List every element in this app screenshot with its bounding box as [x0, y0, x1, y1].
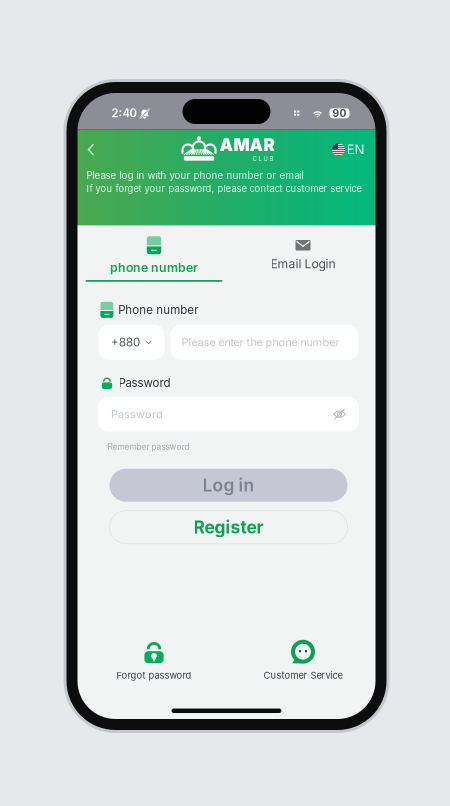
staticText: AMAR — [219, 135, 274, 155]
button[interactable]: Forgot password — [79, 640, 228, 681]
staticText: Password — [111, 408, 163, 421]
staticText: Register — [193, 517, 263, 538]
staticText: +880 — [111, 335, 140, 349]
button[interactable]: phone number — [79, 225, 228, 282]
staticText: Log in — [202, 475, 254, 496]
button[interactable]: Show password — [327, 408, 346, 421]
button[interactable]: Language: English — [324, 133, 375, 166]
staticText: Forgot password — [116, 670, 191, 681]
staticText: 2:40 — [111, 106, 136, 120]
staticText: If you forget your password, please cont… — [86, 183, 361, 194]
button[interactable]: Customer Service — [228, 640, 377, 681]
staticText: Please enter the phone number — [181, 336, 339, 349]
staticText: Customer Service — [263, 670, 342, 681]
staticText: Remember password — [107, 442, 189, 452]
button[interactable]: Country code — [98, 325, 164, 360]
staticText: phone number — [110, 260, 198, 275]
button[interactable]: Log in — [109, 469, 347, 502]
staticText: Password — [118, 376, 170, 390]
staticText: Please log in with your phone number or … — [86, 170, 303, 181]
button[interactable]: Email Login — [228, 229, 377, 278]
staticText: Phone number — [118, 303, 198, 317]
staticText: C L U B — [252, 155, 273, 162]
staticText: Email Login — [270, 256, 335, 271]
button[interactable]: Back — [77, 134, 106, 165]
staticText: EN — [346, 141, 364, 158]
button[interactable]: Register — [109, 511, 347, 544]
staticText: 90 — [332, 107, 346, 119]
